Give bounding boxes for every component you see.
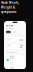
staticText: Symptoms: [1, 10, 16, 14]
staticText: Day: [7, 31, 10, 33]
staticText: 72.4 kg: [20, 44, 23, 48]
staticText: Mon 12 June: [6, 27, 14, 29]
staticText: 1,248: [19, 39, 23, 41]
staticText: Track Meals,: [1, 1, 19, 5]
staticText: Breakfast: [10, 55, 14, 61]
staticText: TODAY'S MEALS: [6, 52, 17, 53]
staticText: Today: [6, 24, 13, 27]
staticText: Weight &: [1, 6, 15, 9]
staticText: Weight: [7, 44, 11, 48]
staticText: Week: [12, 31, 16, 33]
staticText: Calories: [7, 38, 11, 42]
staticText: 420 kcal: [10, 61, 13, 65]
staticText: Lunch: [10, 67, 14, 71]
